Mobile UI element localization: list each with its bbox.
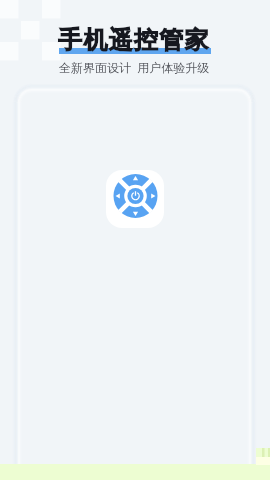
staticText: 全新界面设计 用户体验升级	[59, 59, 210, 75]
button[interactable]: Remote control app	[106, 170, 164, 228]
staticText: 手机遥控管家	[58, 25, 210, 55]
